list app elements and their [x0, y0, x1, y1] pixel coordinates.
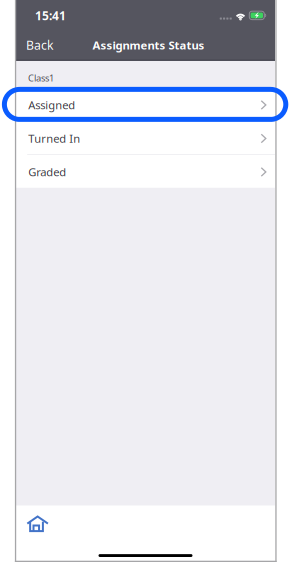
button[interactable]: Assigned [0, 0, 291, 563]
staticText: Class1 [28, 72, 54, 84]
staticText: Back [26, 37, 54, 53]
staticText: 15:41 [35, 7, 66, 24]
button[interactable]: Home [26, 513, 49, 532]
button[interactable]: Graded [0, 0, 291, 563]
button[interactable]: Turned In [0, 0, 291, 563]
staticText: Graded [28, 164, 66, 179]
staticText: Assignments Status [92, 37, 204, 53]
button[interactable]: Back [26, 30, 74, 60]
staticText: Turned In [28, 131, 80, 146]
staticText: Assigned [28, 97, 75, 112]
